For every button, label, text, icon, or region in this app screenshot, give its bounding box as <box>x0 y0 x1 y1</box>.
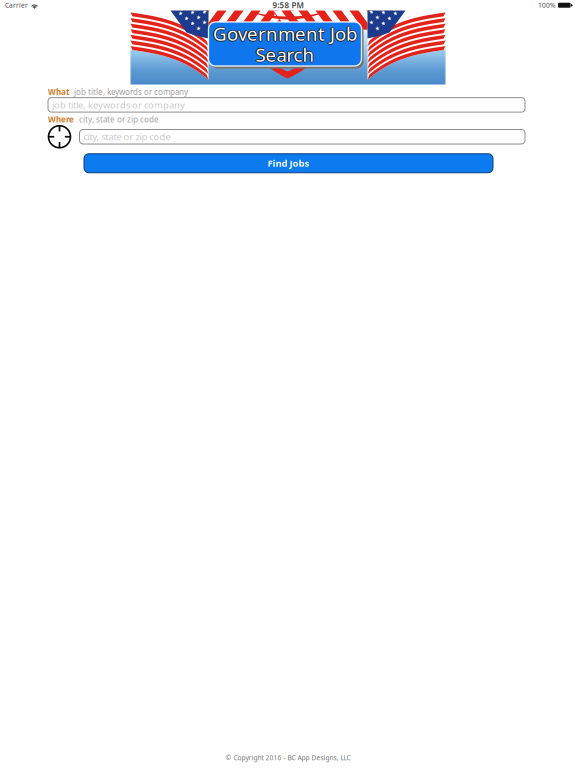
staticText: 9:58 PM <box>272 0 303 10</box>
staticText: city, state or zip code <box>83 131 170 143</box>
staticText: Government Job <box>214 21 358 46</box>
staticText: What <box>48 86 69 97</box>
staticText: Government Job <box>212 21 356 46</box>
staticText: Government Job <box>213 20 357 45</box>
staticText: job title, keywords or company <box>74 86 188 97</box>
staticText: Carrier <box>5 1 28 10</box>
staticText: Search <box>255 42 314 67</box>
staticText: Search <box>255 42 314 67</box>
staticText: city, state or zip code <box>79 114 159 125</box>
staticText: Government Job <box>213 22 357 47</box>
staticText: Search <box>255 43 314 68</box>
button[interactable]: Use current location <box>48 125 79 148</box>
staticText: Where <box>48 114 74 125</box>
staticText: 100% <box>538 1 556 10</box>
staticText: Search <box>255 41 314 66</box>
button[interactable]: Find Jobs <box>84 154 493 173</box>
staticText: © Copyright 2016 - BC App Designs, LLC <box>225 753 350 762</box>
staticText: Search <box>256 42 315 67</box>
staticText: job title, keywords or company <box>52 99 185 111</box>
staticText: Government Job <box>213 21 357 46</box>
staticText: Find Jobs <box>267 157 309 169</box>
